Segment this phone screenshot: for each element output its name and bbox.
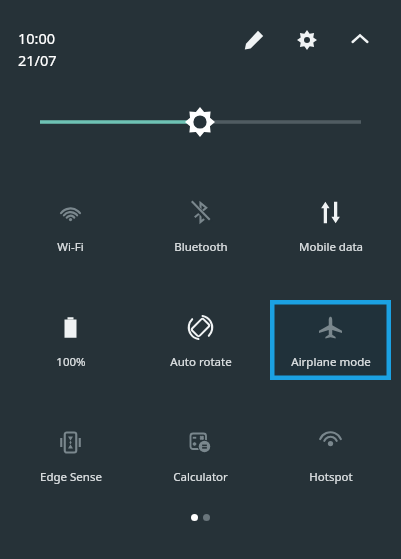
button[interactable]: Edge Sense [10, 415, 131, 495]
button[interactable]: Mobile data [270, 185, 391, 265]
button[interactable]: Wi-Fi [10, 185, 131, 265]
staticText: Bluetooth [174, 239, 228, 255]
staticText: Calculator [173, 469, 228, 485]
button[interactable]: Hotspot [270, 415, 391, 495]
staticText: Auto rotate [170, 354, 232, 370]
staticText: Airplane mode [291, 354, 371, 370]
button[interactable]: Brightness [0, 104, 401, 140]
staticText: Wi-Fi [57, 239, 84, 255]
staticText: Mobile data [299, 239, 363, 255]
staticText: 21/07 [18, 50, 57, 70]
button[interactable]: Bluetooth [140, 185, 261, 265]
button[interactable]: Edit [238, 24, 270, 56]
button[interactable]: Auto rotate [140, 300, 261, 380]
button[interactable]: Settings [291, 24, 323, 56]
staticText: Hotspot [309, 469, 353, 485]
button[interactable]: Calculator [140, 415, 261, 495]
staticText: Edge Sense [40, 469, 102, 485]
staticText: 100% [56, 354, 86, 370]
staticText: 10:00 [18, 28, 56, 48]
button[interactable]: 10:00 [18, 28, 57, 70]
button[interactable]: Collapse [344, 24, 376, 56]
button[interactable]: Airplane mode [270, 300, 391, 380]
button[interactable]: 100% [10, 300, 131, 380]
